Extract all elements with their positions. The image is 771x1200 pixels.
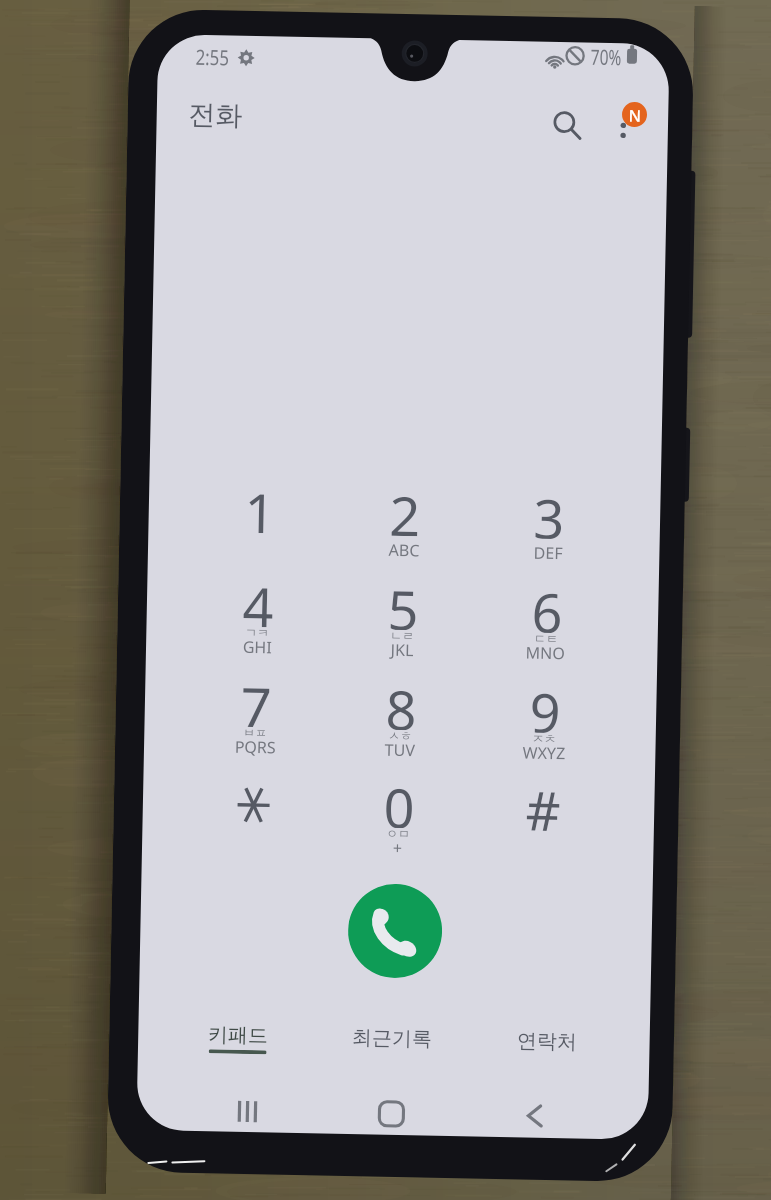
staticText: 1 (244, 475, 276, 533)
staticText: GHI (242, 636, 272, 658)
staticText: MNO (525, 641, 566, 664)
staticText: TUV (384, 739, 416, 761)
staticText: 전화 (188, 98, 243, 133)
staticText: ㅈㅊ (532, 731, 556, 746)
staticText: # (525, 772, 561, 831)
staticText: WXYZ (522, 741, 566, 764)
staticText: PQRS (234, 736, 276, 758)
button[interactable]: Search (543, 100, 590, 147)
staticText: 2:55 (195, 43, 229, 72)
staticText: ㅅㅎ (388, 728, 412, 743)
staticText: 4 (242, 569, 274, 627)
button[interactable]: Recents (221, 1089, 278, 1147)
button[interactable] (332, 653, 470, 751)
button[interactable] (478, 556, 616, 654)
staticText: + (392, 837, 403, 859)
button[interactable] (334, 553, 472, 651)
button[interactable] (336, 459, 473, 557)
staticText: 키패드 (208, 1022, 268, 1048)
staticText: 2 (389, 478, 421, 536)
button[interactable]: More options (606, 92, 655, 141)
staticText: 3 (533, 481, 565, 539)
staticText: 최근기록 (352, 1025, 432, 1052)
staticText: ㄱㅋ (245, 625, 269, 640)
staticText: ㄴㄹ (390, 628, 414, 643)
staticText: 70% (590, 43, 622, 72)
button[interactable] (187, 650, 325, 748)
staticText: ㅇㅁ (386, 826, 410, 841)
button[interactable] (189, 550, 327, 648)
button[interactable]: Home (365, 1089, 422, 1146)
staticText: ABC (388, 539, 420, 561)
button[interactable] (474, 753, 612, 852)
staticText: N (628, 104, 642, 127)
staticText: ㅂㅍ (243, 725, 267, 740)
button[interactable] (480, 462, 617, 560)
button[interactable]: Call (347, 883, 443, 979)
staticText: 8 (385, 672, 417, 730)
button[interactable] (191, 456, 329, 554)
staticText: ㄷㅌ (534, 631, 558, 646)
button[interactable] (185, 748, 323, 846)
staticText: DEF (533, 542, 563, 564)
button[interactable] (476, 655, 614, 754)
staticText: 0 (383, 770, 415, 828)
button[interactable]: 최근기록 (313, 1024, 470, 1081)
button[interactable] (330, 751, 468, 849)
staticText: 5 (387, 572, 419, 630)
button[interactable]: 키패드 (159, 1021, 316, 1078)
button[interactable]: Back (505, 1089, 562, 1146)
staticText: 6 (531, 575, 563, 633)
button[interactable]: 연락처 (468, 1027, 625, 1084)
staticText: 7 (240, 669, 272, 727)
staticText: 9 (529, 675, 561, 733)
staticText: 연락처 (517, 1028, 577, 1055)
staticText: JKL (390, 639, 414, 661)
